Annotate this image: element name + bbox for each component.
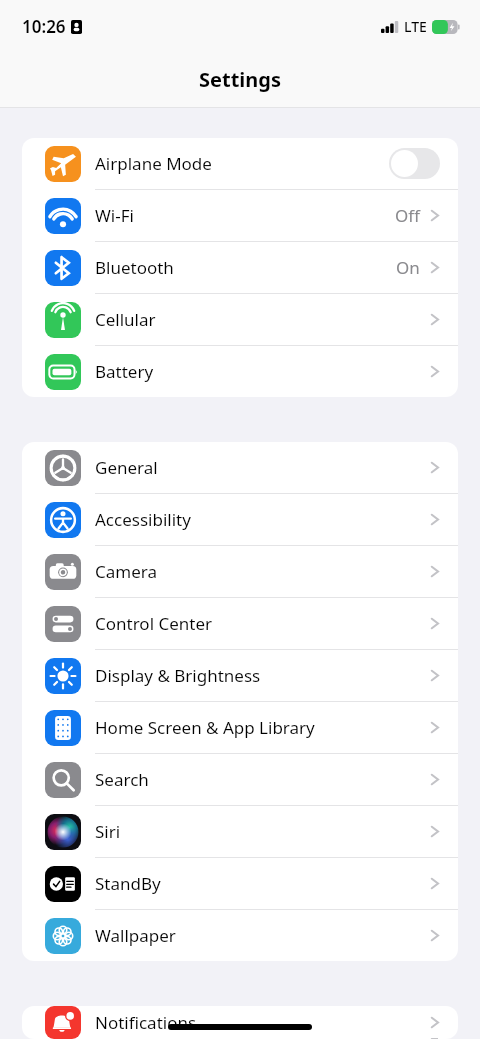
staticText: Accessibility xyxy=(95,508,191,531)
staticText: LTE xyxy=(404,17,427,36)
button[interactable]: Accessibility xyxy=(22,494,458,546)
staticText: Display & Brightness xyxy=(95,664,261,687)
button[interactable]: Notifications xyxy=(22,1006,458,1039)
button[interactable]: Search xyxy=(22,754,458,806)
staticText: Settings xyxy=(199,66,281,93)
button[interactable]: Camera xyxy=(22,546,458,598)
staticText: Bluetooth xyxy=(95,256,174,279)
staticText: Cellular xyxy=(95,308,156,331)
button[interactable]: Airplane Mode toggle xyxy=(389,148,440,179)
staticText: Notifications xyxy=(95,1011,197,1034)
button[interactable]: Airplane Mode xyxy=(22,138,458,190)
staticText: Wallpaper xyxy=(95,924,176,947)
staticText: Camera xyxy=(95,560,157,583)
button[interactable]: Battery xyxy=(22,346,458,397)
button[interactable]: Siri xyxy=(22,806,458,858)
staticText: On xyxy=(396,256,420,279)
button[interactable]: Wallpaper xyxy=(22,910,458,961)
staticText: General xyxy=(95,456,158,479)
staticText: Siri xyxy=(95,820,121,843)
staticText: 10:26 xyxy=(22,15,66,38)
staticText: Home Screen & App Library xyxy=(95,716,315,739)
staticText: StandBy xyxy=(95,872,161,895)
button[interactable]: Control Center xyxy=(22,598,458,650)
button[interactable]: General xyxy=(22,442,458,494)
button[interactable]: Wi-Fi xyxy=(22,190,458,242)
staticText: Wi-Fi xyxy=(95,204,134,227)
staticText: Off xyxy=(395,204,420,227)
button[interactable]: Cellular xyxy=(22,294,458,346)
button[interactable]: Display & Brightness xyxy=(22,650,458,702)
button[interactable]: StandBy xyxy=(22,858,458,910)
staticText: Control Center xyxy=(95,612,213,635)
staticText: Search xyxy=(95,768,149,791)
button[interactable]: Home Screen & App Library xyxy=(22,702,458,754)
button[interactable]: Bluetooth xyxy=(22,242,458,294)
staticText: Battery xyxy=(95,360,154,383)
staticText: Airplane Mode xyxy=(95,152,212,175)
